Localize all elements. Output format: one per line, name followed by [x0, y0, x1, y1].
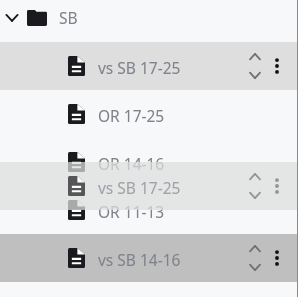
button[interactable]: Collapse folder	[0, 0, 297, 42]
staticText: vs SB 17-25	[98, 57, 181, 78]
button[interactable]: OR 11-13	[0, 186, 297, 234]
other: More options	[268, 51, 286, 81]
other: More options	[268, 243, 286, 273]
staticText: OR 11-13	[98, 201, 165, 222]
staticText: vs SB 17-25	[98, 177, 181, 198]
staticText: vs SB 14-16	[98, 249, 181, 270]
button[interactable]: vs SB 17-25	[0, 42, 297, 90]
button[interactable]: vs SB 17-25	[0, 162, 297, 210]
other: Collapse folder	[5, 11, 19, 25]
staticText: OR 14-16	[98, 153, 165, 174]
button[interactable]: OR 17-25	[0, 90, 297, 138]
other: More options	[268, 171, 286, 201]
other: Reorder item	[244, 49, 266, 83]
other: Reorder item	[244, 169, 266, 203]
staticText: SB	[59, 7, 78, 28]
button[interactable]: OR 14-16	[0, 138, 297, 186]
button[interactable]: vs SB 14-16	[0, 234, 297, 282]
other: Reorder item	[244, 241, 266, 275]
staticText: OR 17-25	[98, 105, 165, 126]
